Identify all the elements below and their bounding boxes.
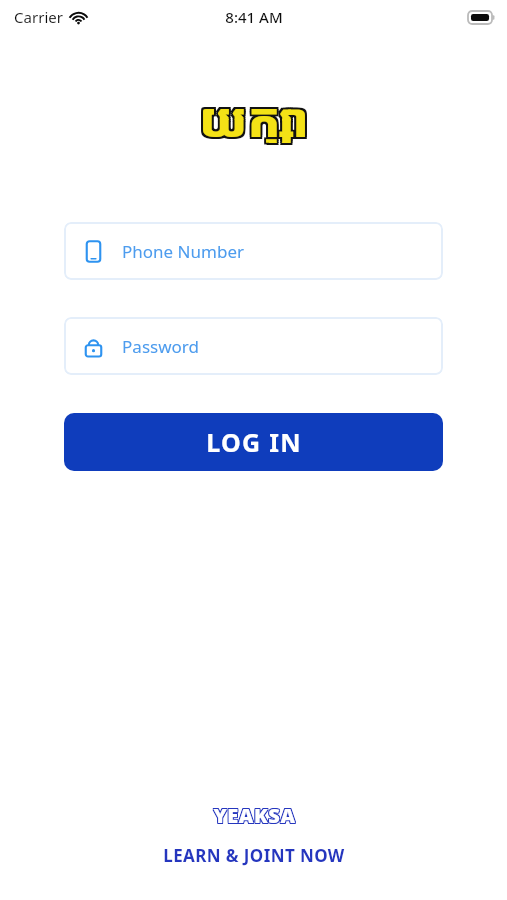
button[interactable]: Phone (64, 222, 443, 280)
staticText: Carrier (14, 7, 63, 27)
staticText: យក្សា (200, 85, 309, 141)
staticText: យក្សា (202, 85, 311, 141)
staticText: YEAKSA (212, 801, 295, 824)
staticText: YEAKSA (213, 801, 296, 824)
staticText: LEARN & JOINT NOW (163, 844, 345, 867)
staticText: YEAKSA (214, 803, 297, 826)
staticText: យក្សា (198, 87, 307, 143)
staticText: យក្សា (202, 89, 311, 145)
staticText: LOG IN (206, 425, 302, 459)
staticText: Phone Number (122, 240, 244, 263)
button[interactable]: LOG IN (64, 413, 443, 471)
staticText: យក្សា (200, 89, 309, 145)
staticText: YEAKSA (213, 803, 296, 826)
staticText: 8:41 AM (225, 7, 283, 27)
staticText: យក្សា (202, 87, 311, 143)
staticText: YEAKSA (214, 802, 297, 825)
staticText: យក្សា (200, 87, 309, 143)
staticText: YEAKSA (212, 803, 295, 826)
staticText: YEAKSA (213, 802, 296, 825)
staticText: យក្សា (198, 89, 307, 145)
button[interactable]: LEARN & JOINT NOW (0, 844, 507, 867)
button[interactable]: Password (64, 317, 443, 375)
staticText: YEAKSA (214, 801, 297, 824)
other: Phone (81, 239, 106, 264)
staticText: YEAKSA (212, 802, 295, 825)
staticText: Password (122, 335, 199, 358)
staticText: យក្សា (198, 85, 307, 141)
other: Password (81, 334, 106, 359)
